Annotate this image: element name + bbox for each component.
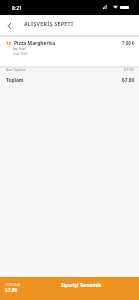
staticText: Boy: Small [13, 47, 26, 51]
staticText: ₺7.00 [124, 67, 134, 72]
staticText: Crust: Thick [13, 52, 28, 56]
staticText: 8:21 [12, 5, 22, 12]
staticText: 1x [6, 40, 12, 46]
staticText: 7.00 ₺ [122, 40, 135, 46]
button[interactable]: TOPLAM [0, 277, 139, 300]
staticText: Pizza Margherita [14, 40, 56, 47]
button[interactable]: 1x [0, 37, 139, 66]
staticText: ₺7.00 [5, 287, 18, 294]
staticText: ₺7.00 [122, 77, 135, 84]
staticText: Siparişi Tamamla [61, 282, 102, 289]
staticText: TOPLAM [5, 282, 21, 287]
button[interactable]: Back [0, 16, 19, 35]
staticText: Ara Toplam [6, 67, 27, 72]
staticText: ALIŞVERİŞ SEPETİ [24, 20, 74, 27]
staticText: Toplam [6, 77, 24, 84]
